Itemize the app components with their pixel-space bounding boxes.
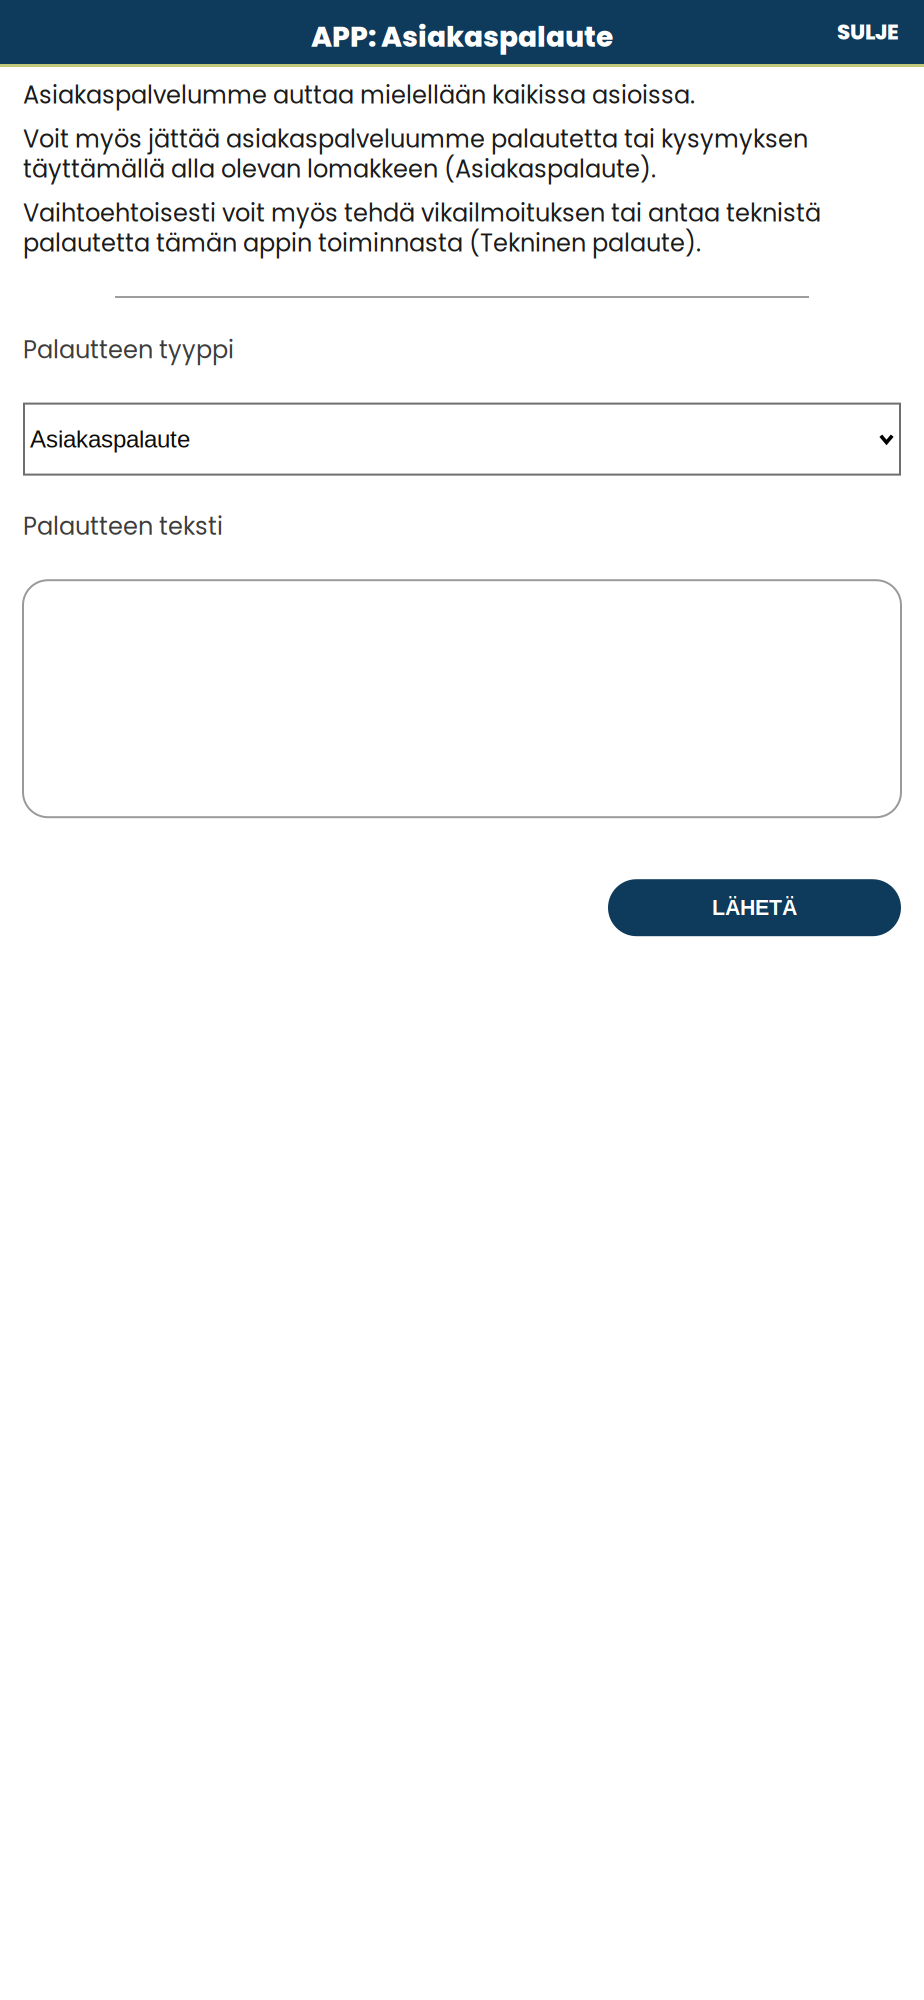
button[interactable]: Asiakaspalaute	[24, 404, 900, 475]
staticText: Voit myös jättää asiakaspalveluumme pala…	[23, 122, 808, 156]
staticText: Palautteen teksti	[23, 510, 223, 543]
button[interactable]: SULJE	[837, 17, 924, 47]
staticText: APP: Asiakaspalaute	[311, 17, 613, 57]
staticText: SULJE	[837, 17, 899, 47]
staticText: Asiakaspalaute	[30, 426, 190, 452]
staticText: täyttämällä alla olevan lomakkeen (Asiak…	[23, 152, 656, 186]
staticText: palautetta tämän appin toiminnasta (Tekn…	[23, 226, 701, 260]
staticText: Asiakaspalvelumme auttaa mielellään kaik…	[23, 78, 695, 112]
staticText: Vaihtoehtoisesti voit myös tehdä vikailm…	[23, 196, 821, 230]
staticText: LÄHETÄ	[712, 896, 797, 920]
staticText: Palautteen tyyppi	[23, 333, 234, 367]
button[interactable]: LÄHETÄ	[608, 879, 901, 936]
